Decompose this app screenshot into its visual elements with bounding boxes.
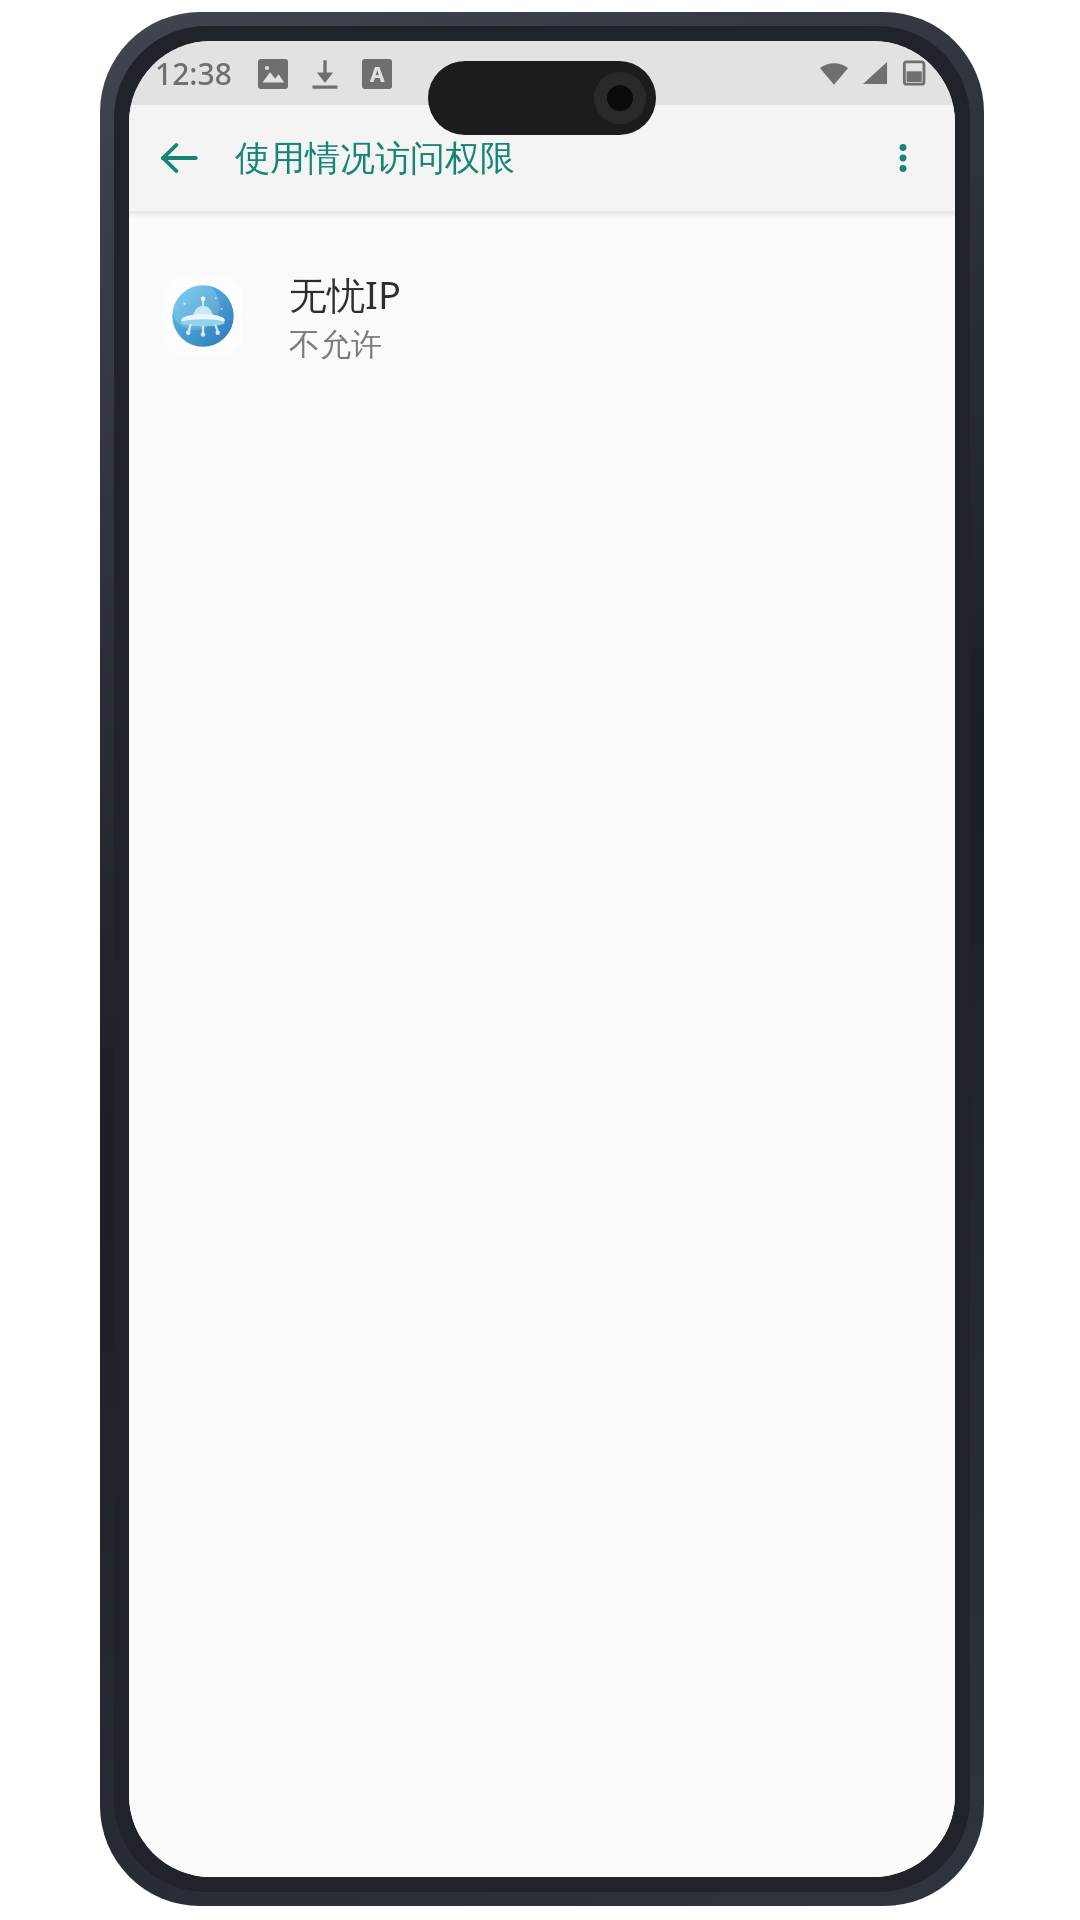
staticText: A (370, 60, 385, 89)
button[interactable]: More options (867, 122, 939, 194)
staticText: 不允许 (289, 325, 382, 364)
staticText: 12:38 (155, 53, 232, 94)
button[interactable]: 无忧IP (129, 248, 955, 384)
button[interactable]: Back (143, 122, 215, 194)
staticText: 使用情况访问权限 (235, 136, 515, 180)
staticText: 无忧IP (289, 268, 401, 320)
